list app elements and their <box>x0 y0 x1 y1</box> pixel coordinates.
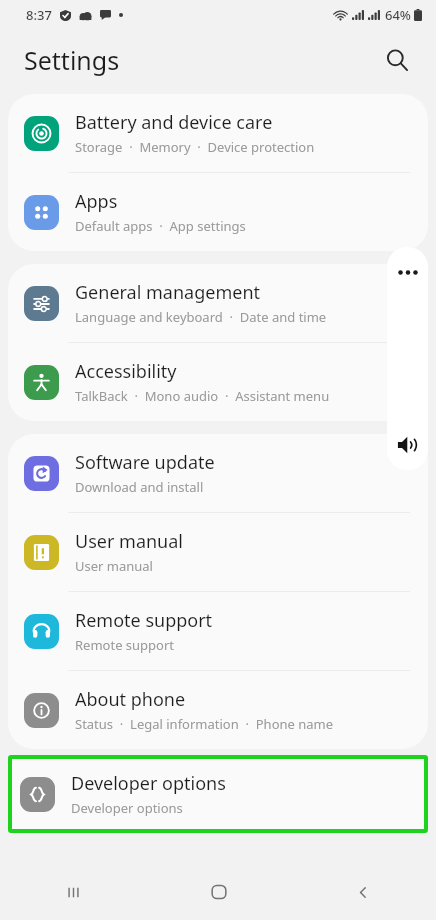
button[interactable]: About phone <box>8 671 428 749</box>
button[interactable]: Developer options <box>8 755 428 833</box>
staticText: Developer options <box>71 799 183 817</box>
button[interactable]: Remote support <box>8 592 428 670</box>
staticText: Software update <box>75 450 215 475</box>
staticText: Battery and device care <box>75 110 273 135</box>
staticText: Status · Legal information · Phone name <box>75 715 334 733</box>
staticText: User manual <box>75 557 153 575</box>
staticText: User manual <box>75 529 183 554</box>
button[interactable]: Battery and device care <box>8 94 428 172</box>
button[interactable]: Software update <box>8 434 428 512</box>
staticText: 8:37 <box>26 6 52 24</box>
staticText: Apps <box>75 189 118 214</box>
button[interactable]: Volume <box>387 424 428 465</box>
staticText: About phone <box>75 687 186 712</box>
staticText: Developer options <box>71 771 226 796</box>
button[interactable]: Search <box>374 37 420 83</box>
button[interactable]: User manual <box>8 513 428 591</box>
staticText: TalkBack · Mono audio · Assistant menu <box>75 387 330 405</box>
staticText: Language and keyboard · Date and time <box>75 308 327 326</box>
button[interactable]: Home <box>146 864 291 920</box>
button[interactable]: Recent apps <box>0 864 146 920</box>
staticText: Download and install <box>75 478 204 496</box>
button[interactable]: Apps <box>8 173 428 251</box>
staticText: Storage · Memory · Device protection <box>75 138 315 156</box>
button[interactable]: Back <box>291 864 436 920</box>
staticText: Accessibility <box>75 359 177 384</box>
button[interactable]: General management <box>8 264 428 342</box>
staticText: Remote support <box>75 636 175 654</box>
staticText: 64% <box>385 6 411 24</box>
staticText: Remote support <box>75 608 213 633</box>
staticText: Settings <box>24 43 120 77</box>
button[interactable]: More options <box>387 252 428 293</box>
staticText: General management <box>75 280 261 305</box>
staticText: Default apps · App settings <box>75 217 246 235</box>
button[interactable]: Accessibility <box>8 343 428 421</box>
